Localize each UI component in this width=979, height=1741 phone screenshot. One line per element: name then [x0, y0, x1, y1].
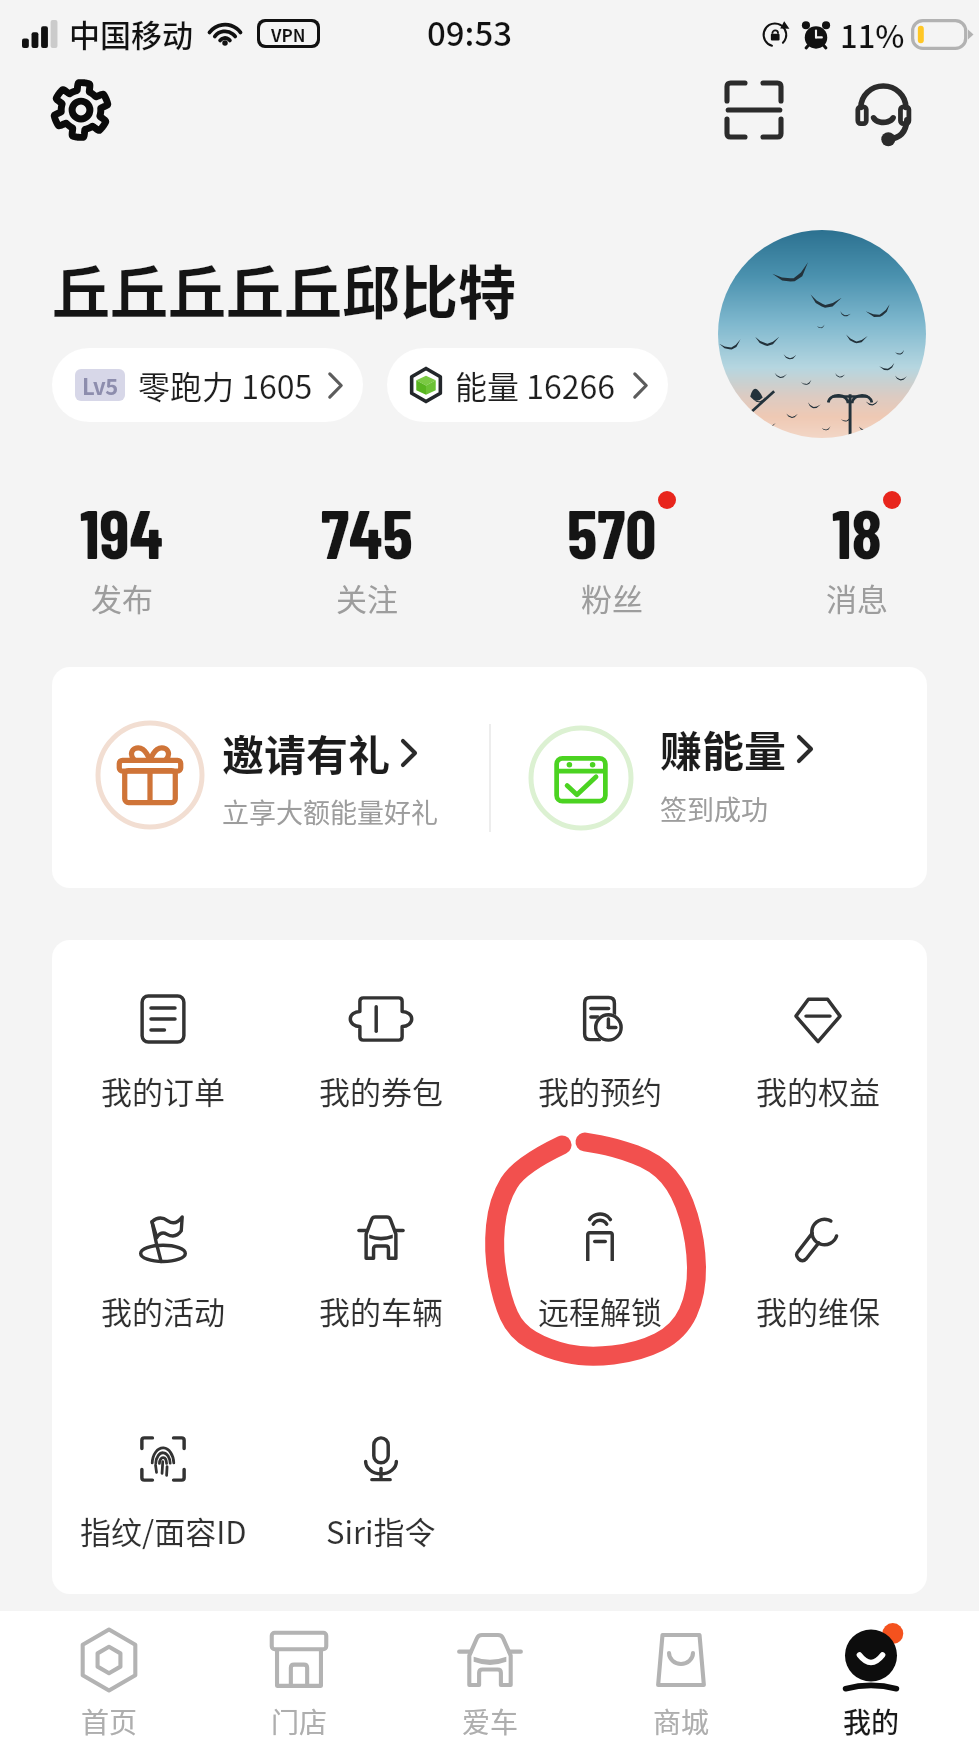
button[interactable]: 远程解锁 — [495, 1215, 705, 1333]
button[interactable]: 570 — [522, 490, 702, 620]
button[interactable]: 指纹/面容ID — [58, 1435, 268, 1553]
button[interactable]: 能量 16266 — [387, 348, 668, 422]
staticText: 关注 — [336, 575, 398, 620]
button[interactable]: 赚能量 — [497, 667, 927, 888]
button[interactable]: 我的预约 — [495, 995, 705, 1113]
staticText: 远程解锁 — [538, 1288, 662, 1333]
staticText: 赚能量 — [660, 718, 787, 779]
staticText: 570 — [567, 490, 657, 573]
button[interactable]: 商城 — [586, 1627, 776, 1741]
button[interactable]: 邀请有礼 — [52, 667, 482, 888]
staticText: 丘丘丘丘丘邱比特 — [52, 247, 517, 331]
staticText: 首页 — [81, 1701, 138, 1741]
staticText: 粉丝 — [581, 575, 643, 620]
button[interactable]: 我的券包 — [276, 995, 486, 1113]
staticText: 我的订单 — [101, 1068, 225, 1113]
staticText: 我的车辆 — [319, 1288, 443, 1333]
button[interactable]: 门店 — [204, 1627, 394, 1741]
button[interactable]: 爱车 — [395, 1627, 585, 1741]
staticText: 门店 — [271, 1701, 328, 1741]
button[interactable]: Siri指令 — [276, 1435, 486, 1553]
button[interactable]: Lv5 — [52, 348, 363, 422]
button[interactable]: 我的权益 — [713, 995, 923, 1113]
button[interactable]: Settings — [44, 73, 118, 147]
button[interactable]: 我的 — [776, 1627, 966, 1741]
button[interactable]: 我的订单 — [58, 995, 268, 1113]
button[interactable]: 194 — [32, 490, 212, 620]
staticText: 我的预约 — [538, 1068, 662, 1113]
button[interactable]: 我的车辆 — [276, 1215, 486, 1333]
staticText: VPN — [271, 22, 306, 45]
staticText: 我的 — [843, 1701, 900, 1741]
staticText: 745 — [321, 490, 413, 573]
button[interactable]: 18 — [767, 490, 947, 620]
staticText: 中国移动 — [69, 11, 193, 56]
staticText: 立享大额能量好礼 — [222, 792, 438, 831]
button[interactable]: 745 — [277, 490, 457, 620]
button[interactable]: 我的维保 — [713, 1215, 923, 1333]
staticText: Lv5 — [82, 369, 118, 401]
staticText: 能量 16266 — [455, 362, 615, 408]
staticText: 我的券包 — [319, 1068, 443, 1113]
button[interactable]: Customer service — [849, 73, 923, 147]
staticText: 商城 — [653, 1701, 710, 1741]
staticText: 11% — [840, 12, 905, 57]
staticText: 爱车 — [462, 1701, 519, 1741]
staticText: 指纹/面容ID — [80, 1508, 247, 1553]
staticText: 零跑力 1605 — [138, 362, 313, 408]
button[interactable]: Scan QR code — [717, 73, 791, 147]
staticText: 消息 — [826, 575, 888, 620]
staticText: 09:53 — [427, 8, 513, 56]
staticText: 18 — [832, 490, 882, 573]
staticText: 194 — [80, 490, 164, 573]
staticText: 我的维保 — [756, 1288, 880, 1333]
button[interactable]: Profile avatar — [718, 230, 926, 438]
button[interactable]: 我的活动 — [58, 1215, 268, 1333]
button[interactable]: 首页 — [14, 1627, 204, 1741]
staticText: 我的活动 — [101, 1288, 225, 1333]
staticText: 签到成功 — [660, 789, 768, 828]
staticText: 邀请有礼 — [222, 722, 391, 783]
staticText: 发布 — [91, 575, 153, 620]
staticText: 我的权益 — [756, 1068, 880, 1113]
staticText: Siri指令 — [326, 1508, 436, 1553]
